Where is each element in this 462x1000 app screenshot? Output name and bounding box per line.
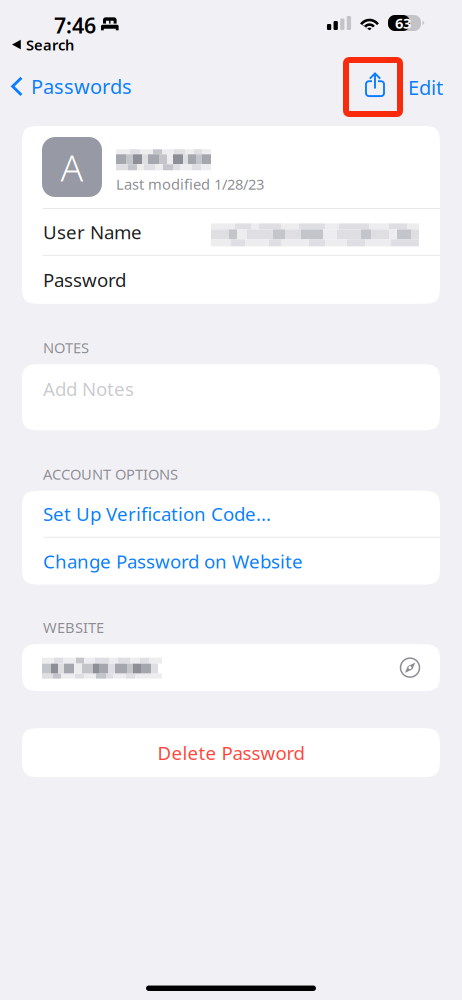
staticText: Last modified 1/28/23 <box>116 174 264 194</box>
staticText: ACCOUNT OPTIONS <box>43 464 178 484</box>
staticText: Search <box>26 35 74 54</box>
button[interactable]: Password <box>22 256 440 304</box>
staticText: Delete Password <box>157 740 304 765</box>
button[interactable]: A <box>22 126 440 208</box>
staticText: Edit <box>408 74 443 101</box>
button[interactable] <box>22 644 440 691</box>
staticText: User Name <box>43 219 142 244</box>
button[interactable]: Change Password on Website <box>22 538 440 585</box>
staticText: 7:46 <box>54 11 96 39</box>
button[interactable]: Share <box>346 60 400 114</box>
button[interactable]: User Name <box>22 209 440 255</box>
button[interactable]: Passwords <box>0 64 142 109</box>
staticText: A <box>60 142 83 192</box>
staticText: Password <box>43 267 126 292</box>
staticText: Add Notes <box>43 376 134 401</box>
staticText: WEBSITE <box>43 618 104 637</box>
staticText: 63 <box>395 13 411 33</box>
button[interactable]: Delete Password <box>22 728 440 777</box>
button[interactable]: Add Notes <box>22 364 440 430</box>
staticText: NOTES <box>43 338 89 357</box>
button[interactable]: Edit <box>397 64 454 111</box>
button[interactable]: Set Up Verification Code... <box>22 491 440 537</box>
staticText: Set Up Verification Code... <box>43 501 271 526</box>
staticText: Passwords <box>31 73 132 100</box>
staticText: Change Password on Website <box>43 549 303 574</box>
